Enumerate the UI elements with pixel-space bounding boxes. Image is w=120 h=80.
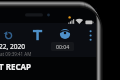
staticText: T RECAP — [0, 61, 32, 72]
staticText: at 09:39:41 AM — [0, 51, 32, 57]
button[interactable]: Undo — [1, 28, 16, 43]
button[interactable]: 00:04 — [51, 42, 74, 51]
button[interactable]: Text tool — [31, 28, 45, 42]
button[interactable]: Preview — [55, 24, 75, 44]
staticText: 22, 2020 — [0, 42, 26, 51]
staticText: 00:04 — [56, 43, 70, 50]
button[interactable]: More options — [85, 28, 97, 40]
